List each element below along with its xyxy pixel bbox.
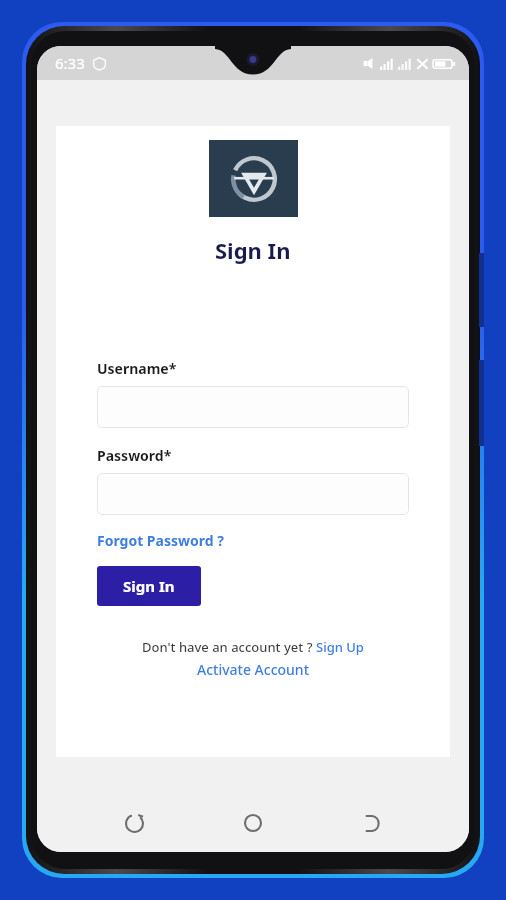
staticText: Username*: [97, 359, 177, 378]
button[interactable]: Forgot Password ?: [97, 531, 224, 550]
button[interactable]: Sign Up: [316, 638, 364, 656]
staticText: Sign In: [123, 576, 175, 596]
button[interactable]: Recent apps: [112, 801, 156, 845]
staticText: Password*: [97, 446, 172, 465]
button[interactable]: [97, 386, 409, 428]
button[interactable]: Home: [231, 801, 275, 845]
button[interactable]: Back: [350, 801, 394, 845]
button[interactable]: [97, 473, 409, 515]
staticText: Sign Up: [316, 638, 364, 656]
button[interactable]: Sign In: [97, 566, 201, 606]
button[interactable]: Activate Account: [197, 660, 309, 679]
staticText: Forgot Password ?: [97, 531, 224, 550]
staticText: 6:33: [55, 53, 85, 73]
staticText: Activate Account: [197, 660, 309, 679]
staticText: Don't have an account yet ?: [142, 638, 316, 656]
staticText: Sign In: [215, 235, 291, 265]
